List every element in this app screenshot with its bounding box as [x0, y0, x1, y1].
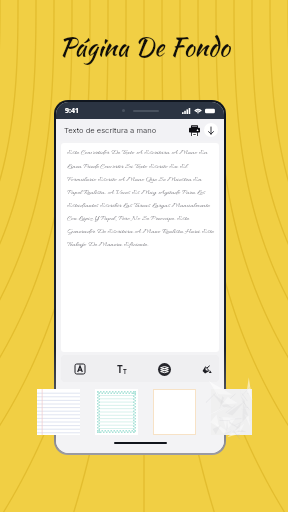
button[interactable]: Grid paper [95, 389, 138, 435]
staticText: 9:41 [65, 106, 79, 116]
button[interactable]: Layers [153, 358, 175, 380]
staticText: Este Convertidor De Texto A Escritura A … [67, 148, 215, 249]
staticText: Página De Fondo [59, 29, 230, 65]
button[interactable]: Background [195, 358, 217, 380]
staticText: T [123, 367, 127, 376]
button[interactable]: Texto de escritura a mano [64, 126, 157, 135]
button[interactable]: Download [204, 123, 218, 137]
button[interactable]: Text size [111, 358, 133, 380]
button[interactable]: Crumpled paper [211, 389, 252, 435]
button[interactable]: Lined paper [37, 389, 80, 435]
button[interactable]: Font [69, 358, 91, 380]
button[interactable]: Print [187, 123, 201, 137]
button[interactable]: Plain paper [153, 389, 196, 435]
staticText: T [117, 362, 123, 376]
